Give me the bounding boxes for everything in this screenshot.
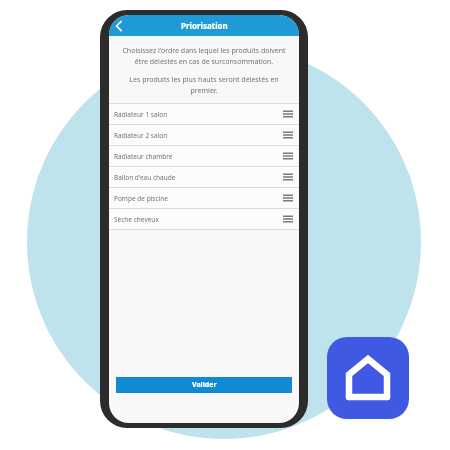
staticText: Les produits les plus hauts seront déles… bbox=[117, 75, 291, 95]
button[interactable]: Ballon d'eau chaude bbox=[109, 167, 299, 187]
staticText: Choisissez l'ordre dans lequel les produ… bbox=[117, 46, 291, 66]
staticText: Radiateur chambre bbox=[114, 152, 282, 161]
staticText: Sèche cheveux bbox=[114, 215, 282, 224]
staticText: Valider bbox=[192, 380, 217, 390]
staticText: Ballon d'eau chaude bbox=[114, 173, 282, 182]
button[interactable]: Radiateur 1 salon bbox=[109, 104, 299, 124]
button[interactable]: Back bbox=[109, 17, 127, 35]
button[interactable]: Pompe de piscine bbox=[109, 188, 299, 208]
button[interactable]: Valider bbox=[116, 377, 292, 393]
button[interactable]: Radiateur 2 salon bbox=[109, 125, 299, 145]
staticText: Priorisation bbox=[181, 20, 228, 31]
button[interactable]: Radiateur chambre bbox=[109, 146, 299, 166]
staticText: Radiateur 2 salon bbox=[114, 131, 282, 140]
button[interactable]: Home app bbox=[327, 337, 409, 419]
staticText: Radiateur 1 salon bbox=[114, 110, 282, 119]
staticText: Pompe de piscine bbox=[114, 194, 282, 203]
button[interactable]: Sèche cheveux bbox=[109, 209, 299, 229]
